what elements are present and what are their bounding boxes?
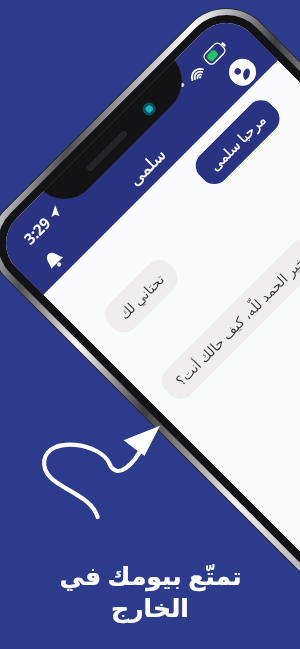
- staticText: الخارج: [111, 594, 189, 623]
- staticText: تحتاني لك: [115, 269, 168, 323]
- staticText: 3:29: [19, 213, 54, 248]
- staticText: بخير الحمد للّه، كيف حالك أنت؟: [171, 249, 300, 390]
- button[interactable]: Profile: [223, 53, 262, 91]
- staticText: مرحبا سلمى: [205, 110, 270, 175]
- button[interactable]: بخير الحمد للّه، كيف حالك أنت؟: [156, 233, 300, 405]
- button[interactable]: مرحبا سلمى: [189, 94, 286, 190]
- button[interactable]: Notifications: [37, 243, 71, 277]
- staticText: سلمى: [124, 144, 170, 190]
- button[interactable]: تحتاني لك: [99, 254, 184, 339]
- staticText: تمتّع بيومك في: [59, 558, 242, 592]
